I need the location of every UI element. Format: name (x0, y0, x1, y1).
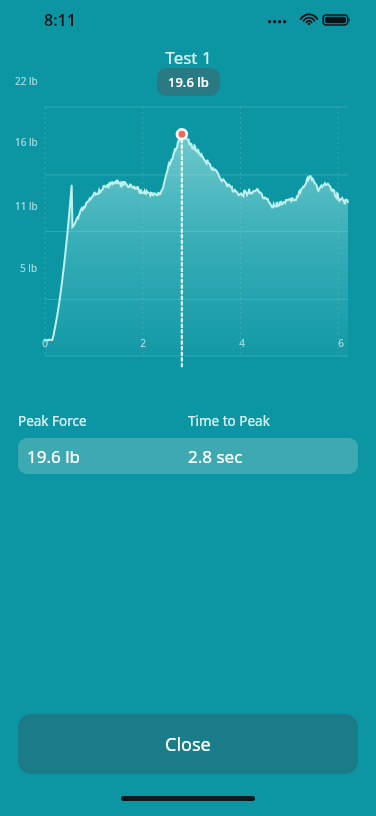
button[interactable]: Close (18, 714, 358, 774)
staticText: Close (165, 732, 211, 757)
staticText: Peak Force (18, 412, 87, 430)
staticText: 16 lb (15, 135, 38, 149)
staticText: 4 (239, 336, 245, 350)
staticText: 19.6 lb (168, 73, 209, 91)
staticText: Time to Peak (188, 412, 270, 430)
staticText: 22 lb (15, 74, 38, 88)
staticText: 19.6 lb (27, 445, 80, 468)
staticText: 2 (140, 336, 146, 350)
staticText: 6 (338, 336, 344, 350)
staticText: 8:11 (44, 9, 76, 31)
staticText: 0 (42, 336, 48, 350)
staticText: Test 1 (165, 46, 212, 69)
staticText: 11 lb (15, 199, 38, 213)
staticText: 5 lb (20, 261, 38, 275)
staticText: 2.8 sec (188, 445, 243, 468)
